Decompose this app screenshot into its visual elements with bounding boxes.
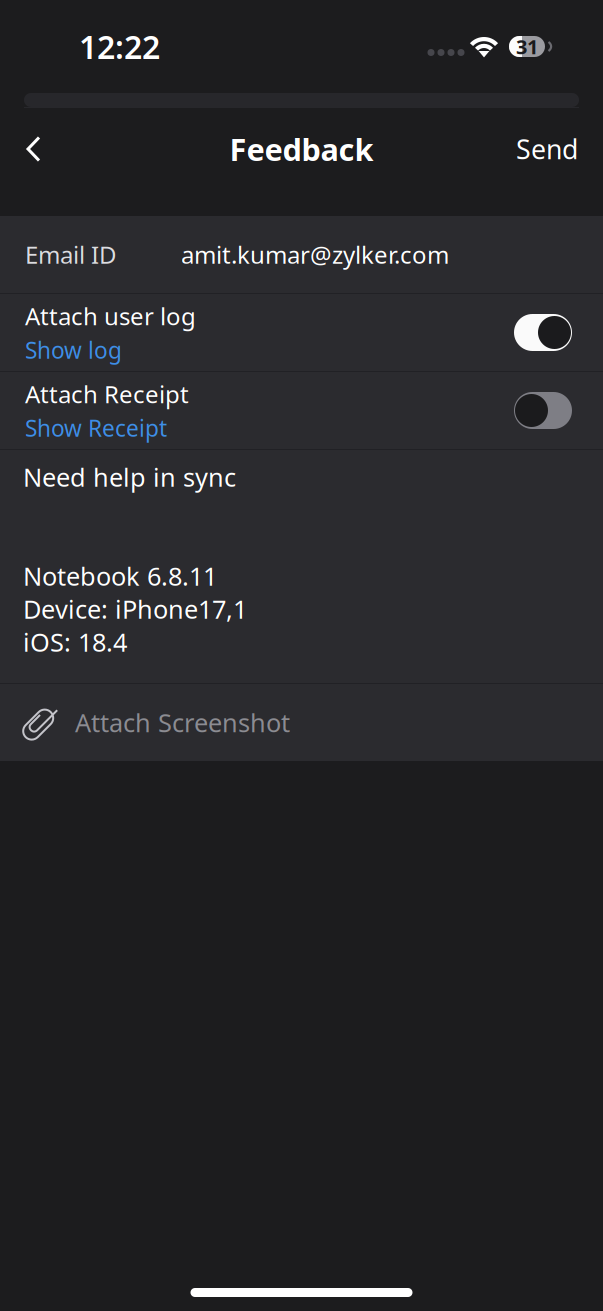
button[interactable]: Attach Receipt [508,392,572,429]
button[interactable]: Attach Screenshot [0,684,603,761]
staticText: Attach Screenshot [75,706,290,739]
staticText: iOS: 18.4 [23,625,127,659]
staticText: 31 [516,33,538,60]
staticText: Show log [25,335,122,365]
button[interactable]: Show log [25,335,122,365]
staticText: 12:22 [79,25,160,68]
button[interactable]: Back [0,121,69,176]
button[interactable]: Send [488,117,603,181]
staticText: amit.kumar@zylker.com [181,239,449,270]
staticText: Need help in sync [23,460,236,494]
staticText: Attach user log [25,300,196,332]
staticText: Feedback [229,129,373,169]
staticText: Email ID [25,239,117,270]
staticText: Send [516,131,578,167]
button[interactable]: Attach user log [508,314,572,351]
staticText: Device: iPhone17,1 [23,592,247,626]
staticText: Notebook 6.8.11 [23,559,217,593]
staticText: Show Receipt [25,413,167,443]
button[interactable]: Show Receipt [25,413,167,443]
staticText: Attach Receipt [25,378,189,410]
